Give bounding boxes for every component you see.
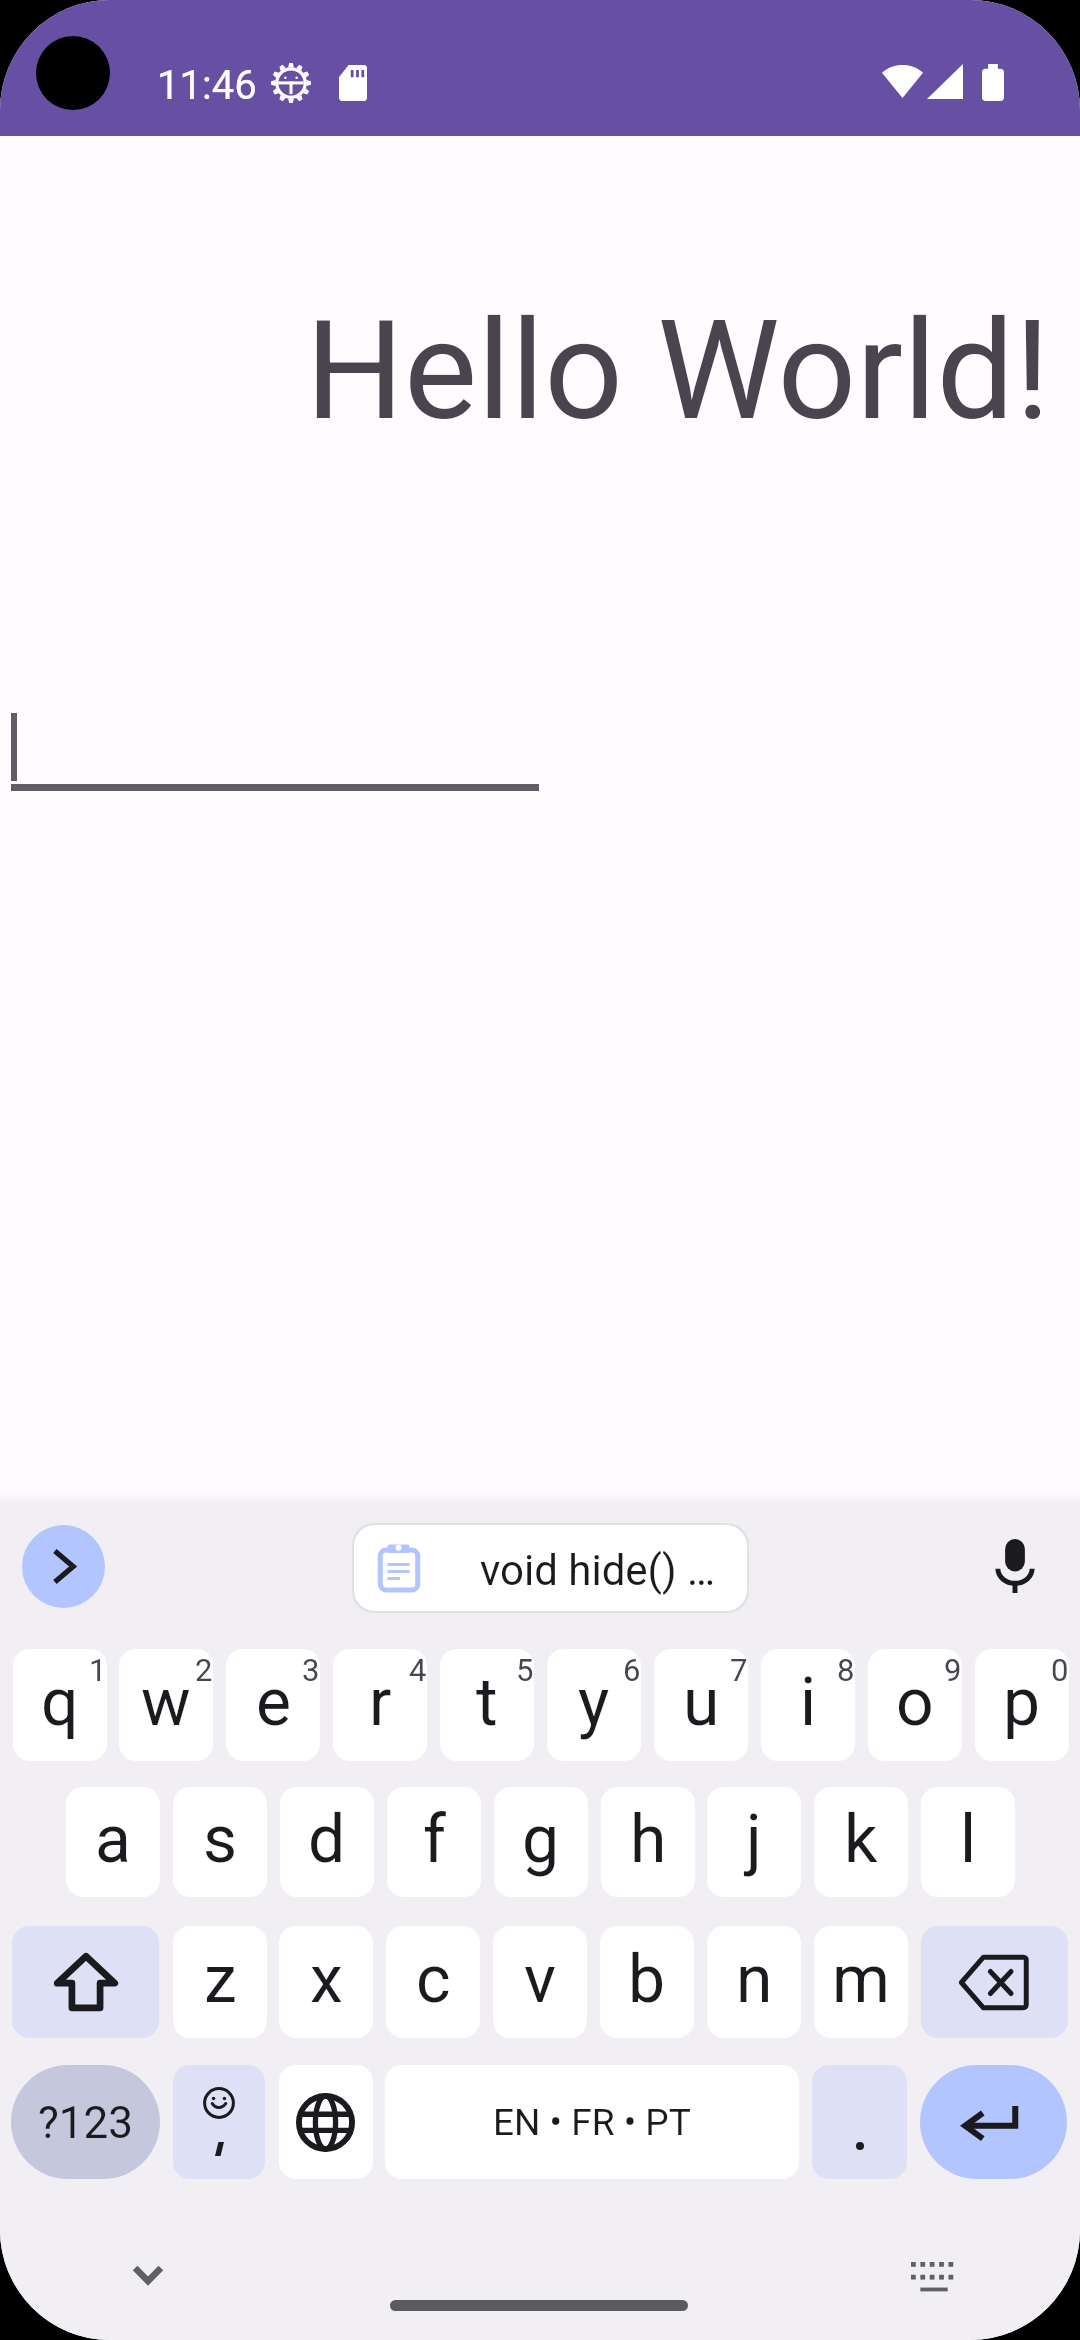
staticText: EN • FR • PT: [493, 2101, 691, 2144]
button[interactable]: Hide keyboard: [108, 2234, 188, 2314]
button[interactable]: g: [494, 1787, 588, 1897]
button[interactable]: j: [707, 1787, 801, 1897]
button[interactable]: q: [13, 1649, 107, 1761]
button[interactable]: [812, 2065, 907, 2179]
button[interactable]: i: [761, 1649, 855, 1761]
button[interactable]: w: [119, 1649, 213, 1761]
staticText: r: [369, 1664, 392, 1741]
button[interactable]: void hide() …: [354, 1525, 747, 1611]
button[interactable]: y: [547, 1649, 641, 1761]
button[interactable]: EN • FR • PT: [385, 2065, 799, 2179]
staticText: q: [41, 1664, 79, 1741]
staticText: u: [683, 1664, 720, 1741]
staticText: 9: [944, 1652, 962, 1688]
staticText: Hello World!: [0, 290, 1050, 452]
staticText: t: [476, 1664, 498, 1741]
staticText: w: [141, 1664, 191, 1741]
button[interactable]: Emoji: [173, 2065, 265, 2179]
button[interactable]: e: [226, 1649, 320, 1761]
button[interactable]: z: [173, 1926, 267, 2038]
button[interactable]: Switch keyboard: [892, 2234, 972, 2314]
staticText: 2: [195, 1652, 213, 1688]
button[interactable]: t: [440, 1649, 534, 1761]
button[interactable]: Voice input: [975, 1526, 1055, 1606]
staticText: i: [800, 1664, 817, 1741]
staticText: 8: [837, 1652, 855, 1688]
staticText: 11:46: [157, 62, 257, 109]
button[interactable]: Enter: [920, 2065, 1067, 2179]
button[interactable]: ?123: [11, 2065, 160, 2179]
button[interactable]: h: [601, 1787, 695, 1897]
staticText: y: [578, 1664, 610, 1741]
staticText: c: [416, 1941, 451, 2018]
button[interactable]: a: [66, 1787, 160, 1897]
staticText: f: [423, 1801, 446, 1878]
staticText: 0: [1051, 1652, 1069, 1688]
staticText: o: [896, 1664, 934, 1741]
button[interactable]: Text input field: [11, 700, 539, 791]
staticText: a: [95, 1801, 131, 1878]
button[interactable]: Change language: [279, 2065, 373, 2179]
button[interactable]: Expand toolbar: [22, 1525, 105, 1608]
staticText: ?123: [38, 2097, 133, 2149]
button[interactable]: k: [814, 1787, 908, 1897]
button[interactable]: m: [814, 1926, 908, 2038]
staticText: 7: [730, 1652, 748, 1688]
button[interactable]: r: [333, 1649, 427, 1761]
button[interactable]: c: [386, 1926, 480, 2038]
button[interactable]: d: [280, 1787, 374, 1897]
button[interactable]: b: [600, 1926, 694, 2038]
staticText: l: [960, 1801, 977, 1878]
staticText: p: [1003, 1664, 1041, 1741]
button[interactable]: Backspace: [921, 1926, 1068, 2038]
button[interactable]: n: [707, 1926, 801, 2038]
button[interactable]: u: [654, 1649, 748, 1761]
staticText: b: [628, 1941, 666, 2018]
button[interactable]: x: [279, 1926, 373, 2038]
staticText: void hide() …: [480, 1546, 716, 1595]
staticText: 1: [89, 1652, 107, 1688]
staticText: n: [736, 1941, 773, 2018]
staticText: v: [524, 1941, 556, 2018]
staticText: 4: [409, 1652, 427, 1688]
button[interactable]: p: [975, 1649, 1069, 1761]
staticText: h: [630, 1801, 667, 1878]
button[interactable]: v: [493, 1926, 587, 2038]
staticText: k: [844, 1801, 878, 1878]
staticText: j: [746, 1801, 762, 1878]
button[interactable]: l: [921, 1787, 1015, 1897]
staticText: g: [522, 1801, 560, 1878]
button[interactable]: s: [173, 1787, 267, 1897]
button[interactable]: o: [868, 1649, 962, 1761]
staticText: 3: [302, 1652, 320, 1688]
staticText: s: [203, 1801, 238, 1878]
staticText: 5: [516, 1652, 534, 1688]
staticText: x: [310, 1941, 343, 2018]
staticText: d: [308, 1801, 346, 1878]
button[interactable]: Shift: [12, 1926, 159, 2038]
button[interactable]: f: [387, 1787, 481, 1897]
staticText: z: [204, 1941, 237, 2018]
staticText: m: [832, 1941, 890, 2018]
staticText: 6: [623, 1652, 641, 1688]
staticText: e: [256, 1664, 291, 1741]
